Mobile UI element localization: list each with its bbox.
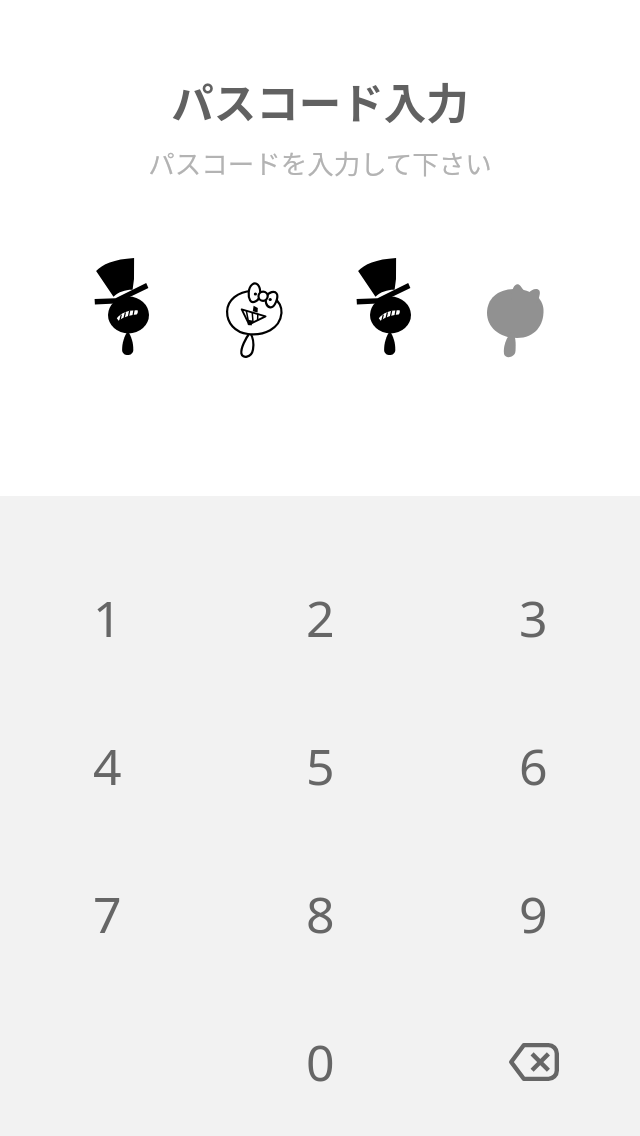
button[interactable]: 8	[214, 840, 427, 988]
button[interactable]: Backspace	[427, 988, 640, 1136]
button[interactable]: 7	[0, 840, 214, 988]
staticText: 0	[306, 1028, 335, 1096]
button[interactable]: Passcode digit 3	[320, 252, 451, 362]
staticText: パスコード入力	[171, 70, 469, 132]
staticText: 3	[519, 584, 548, 652]
staticText: 2	[306, 584, 335, 652]
button[interactable]: 4	[0, 692, 214, 840]
button[interactable]: 5	[214, 692, 427, 840]
button[interactable]: 0	[214, 988, 427, 1136]
staticText: パスコードを入力して下さい	[148, 143, 492, 181]
staticText: 5	[306, 732, 335, 800]
button[interactable]: 9	[427, 840, 640, 988]
staticText: 8	[306, 880, 335, 948]
button[interactable]: 6	[427, 692, 640, 840]
staticText: 9	[519, 880, 548, 948]
button[interactable]: 2	[214, 544, 427, 692]
button[interactable]: Passcode digit 1	[58, 252, 189, 362]
staticText: 7	[93, 880, 122, 948]
button[interactable]: Passcode digit 2	[189, 252, 320, 362]
button[interactable]: 1	[0, 544, 214, 692]
staticText: 6	[519, 732, 548, 800]
button[interactable]: 3	[427, 544, 640, 692]
button[interactable]: Passcode digit 4	[451, 252, 582, 362]
staticText: 1	[93, 584, 122, 652]
staticText: 4	[93, 732, 122, 800]
